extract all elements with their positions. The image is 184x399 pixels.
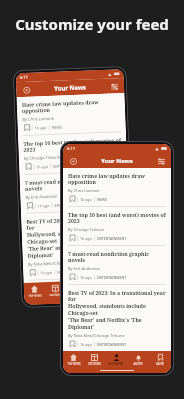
staticText: 6:17	[67, 146, 75, 151]
button[interactable]: Best TV of 2023: In a transitional year …	[63, 285, 171, 351]
staticText: Customize your feed	[15, 14, 169, 34]
staticText: SAVED	[117, 290, 125, 294]
staticText: By Erik Anderson	[25, 194, 57, 200]
button[interactable]: Save article	[68, 340, 76, 348]
staticText: By Chicago Tribune	[68, 227, 105, 232]
staticText: YOUR NEWS	[108, 362, 124, 366]
button[interactable]: Settings	[68, 156, 78, 166]
staticText: By Chris Lamone	[68, 188, 100, 193]
button[interactable]: TOP NEWS	[63, 351, 84, 368]
staticText: Your News	[54, 83, 86, 93]
staticText: TOP NEWS	[67, 362, 81, 366]
button[interactable]: YOUR NEWS	[66, 280, 88, 298]
staticText: SECTIONS	[88, 362, 101, 366]
staticText: TOP NEWS	[28, 293, 42, 298]
staticText: By Chris Lamone	[22, 116, 54, 122]
staticText: Hate crime law updates draw opposition	[22, 97, 120, 115]
staticText: ALERTS	[94, 291, 104, 295]
button[interactable]: Edit feed	[156, 156, 166, 166]
staticText: The top 10 best (and worst) movies of 20…	[23, 136, 122, 154]
staticText: Best TV of 2023: In a transitional year …	[68, 289, 166, 331]
staticText: NEWS	[52, 124, 63, 130]
staticText: SAVED	[156, 362, 164, 366]
button[interactable]: 7 must-read nonfiction graphic novels	[63, 246, 171, 285]
button[interactable]: 4 spirited cocktails for Hanukkah	[24, 277, 132, 283]
staticText: Your News	[101, 157, 133, 165]
button[interactable]: 7 must-read nonfiction graphic novels	[19, 171, 129, 214]
button[interactable]: Save article	[68, 273, 76, 281]
button[interactable]: ALERTS	[127, 351, 149, 368]
button[interactable]: YOUR NEWS	[105, 351, 127, 368]
staticText: 7 must-read nonfiction graphic novels	[68, 250, 166, 264]
button[interactable]: The top 10 best (and worst) movies of 20…	[18, 132, 127, 175]
button[interactable]: SAVED	[149, 351, 171, 368]
button[interactable]: Save article	[68, 234, 76, 242]
staticText: ENTERTAINMENT	[57, 269, 87, 275]
button[interactable]: Best TV of 2023: In a transitional year …	[21, 210, 131, 281]
staticText: YOUR NEWS	[69, 292, 85, 296]
staticText: 1h ago	[36, 164, 48, 169]
staticText: 1h ago	[80, 236, 92, 241]
staticText: 1h ago	[80, 275, 92, 280]
staticText: SECTIONS	[49, 292, 62, 297]
button[interactable]: The top 10 best (and worst) movies of 20…	[63, 207, 171, 246]
staticText: 1h ago	[80, 197, 92, 202]
button[interactable]: Save article	[22, 124, 31, 132]
button[interactable]: Save article	[24, 163, 32, 171]
button[interactable]: Edit feed	[109, 81, 119, 92]
staticText: ENTERTAINMENT	[97, 275, 127, 280]
staticText: By Nina Metz/Chicago Tribune	[68, 333, 125, 338]
staticText: 7 must-read nonfiction graphic novels	[25, 175, 123, 193]
staticText: Hate crime law updates draw opposition	[68, 172, 166, 186]
staticText: 1h ago	[80, 342, 92, 347]
button[interactable]: Hate crime law updates draw opposition	[16, 93, 126, 136]
staticText: ENTERTAINMENT	[97, 236, 127, 241]
staticText: By Erik Anderson	[68, 266, 100, 271]
button[interactable]: Save article	[68, 195, 76, 203]
button[interactable]: SAVED	[110, 279, 132, 297]
staticText: 1h ago	[40, 270, 52, 275]
button[interactable]: TOP NEWS	[24, 282, 45, 300]
staticText: 1h ago	[35, 125, 47, 130]
button[interactable]: Settings	[21, 85, 31, 95]
staticText: Best TV of 2023: In a transitional year …	[26, 214, 126, 260]
staticText: 6:17	[20, 75, 28, 80]
button[interactable]: Save article	[28, 268, 36, 277]
staticText: By Chicago Tribune	[24, 154, 61, 161]
button[interactable]: SECTIONS	[45, 281, 66, 299]
button[interactable]: Save article	[25, 202, 34, 210]
staticText: 1h ago	[38, 203, 50, 208]
staticText: The top 10 best (and worst) movies of 20…	[68, 211, 166, 225]
button[interactable]: SECTIONS	[84, 351, 105, 368]
staticText: ENTERTAINMENT	[53, 163, 83, 169]
staticText: ALERTS	[133, 362, 143, 366]
staticText: By Nina Metz/Chicago Tribune	[28, 260, 85, 267]
button[interactable]: Hate crime law updates draw opposition	[63, 168, 171, 207]
staticText: ENTERTAINMENT	[97, 342, 127, 347]
button[interactable]: ALERTS	[88, 280, 110, 297]
staticText: NEWS	[97, 197, 108, 202]
staticText: ENTERTAINMENT	[55, 202, 85, 208]
